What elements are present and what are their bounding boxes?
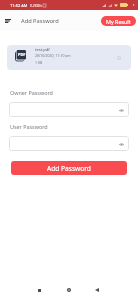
button[interactable]: Toggle password visibility [9, 102, 129, 117]
staticText: 11:52 AM [10, 3, 28, 8]
button[interactable]: Back [86, 279, 108, 300]
button[interactable]: Add Password [11, 161, 127, 175]
staticText: test.pdf [35, 47, 50, 53]
staticText: 0.2KB/s [30, 3, 42, 8]
button[interactable]: PDF [7, 45, 131, 70]
button[interactable]: Toggle password visibility [9, 136, 129, 151]
button[interactable]: Menu [1, 14, 15, 28]
staticText: PDF [18, 52, 26, 57]
button[interactable]: My Result [101, 16, 136, 26]
staticText: Add Password [47, 164, 91, 173]
button[interactable]: Home [58, 279, 80, 300]
staticText: Add Password [21, 17, 59, 25]
button[interactable]: Toggle password visibility [117, 140, 125, 148]
staticText: My Result [106, 18, 131, 25]
button[interactable]: File options [114, 53, 123, 62]
staticText: User Password [10, 123, 48, 130]
button[interactable]: Recents [28, 279, 50, 300]
staticText: Owner Password [10, 89, 53, 96]
staticText: 28/10/2020, 11:10 am [35, 53, 71, 58]
button[interactable]: Toggle password visibility [117, 106, 125, 114]
staticText: 1 KB [35, 60, 43, 65]
